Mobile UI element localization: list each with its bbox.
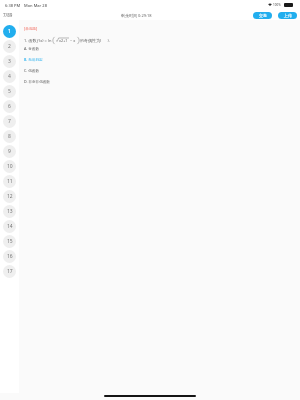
staticText: 100% — [273, 3, 281, 7]
button[interactable]: 交卷 — [253, 12, 272, 19]
staticText: D. 非奇非偶函数 — [24, 79, 50, 84]
staticText: C. 偶函数 — [24, 68, 39, 73]
staticText: 剩余时间 0:29:18 — [121, 13, 152, 18]
staticText: 5 — [8, 88, 11, 95]
button[interactable]: 9 — [3, 145, 16, 158]
button[interactable]: 11 — [3, 175, 16, 188]
button[interactable]: C. 偶函数 — [24, 65, 300, 76]
button[interactable]: 上传 — [278, 12, 297, 19]
button[interactable]: 2 — [3, 40, 16, 53]
button[interactable]: 15 — [3, 235, 16, 248]
staticText: Mon Mar 28 — [24, 3, 47, 8]
button[interactable]: 14 — [3, 220, 16, 233]
staticText: 13 — [7, 208, 13, 215]
button[interactable]: 13 — [3, 205, 16, 218]
staticText: A. 奇函数 — [24, 46, 40, 51]
button[interactable]: 8 — [3, 130, 16, 143]
staticText: 16 — [7, 253, 13, 260]
staticText: [单选题] — [24, 26, 38, 31]
staticText: 上传 — [284, 13, 292, 18]
staticText: 8 — [8, 133, 11, 140]
staticText: 1. 函数 — [24, 38, 37, 43]
staticText: 17 — [7, 268, 13, 275]
button[interactable]: 17 — [3, 265, 16, 278]
staticText: 2 — [8, 43, 11, 50]
staticText: 10 — [7, 163, 13, 170]
staticText: 9 — [8, 148, 11, 155]
staticText: 6 — [8, 103, 11, 110]
staticText: 12 — [7, 193, 13, 200]
staticText: 的奇偶性为( ). — [80, 38, 110, 43]
staticText: 1 — [8, 28, 11, 35]
staticText: − x — [70, 38, 76, 43]
button[interactable]: 7 — [3, 115, 16, 128]
button[interactable]: A. 奇函数 — [24, 43, 300, 54]
staticText: 14 — [7, 223, 13, 230]
button[interactable]: 5 — [3, 85, 16, 98]
button[interactable]: 10 — [3, 160, 16, 173]
staticText: x2+1 — [59, 38, 68, 43]
staticText: f — [37, 38, 39, 43]
staticText: 7/89 — [3, 12, 13, 18]
staticText: B. 无法判定 — [24, 57, 43, 62]
staticText: 6:38 PM — [5, 3, 21, 8]
staticText: 3 — [8, 58, 11, 65]
staticText: (x) = ln — [39, 38, 52, 43]
staticText: 7 — [8, 118, 11, 125]
button[interactable]: 12 — [3, 190, 16, 203]
button[interactable]: 3 — [3, 55, 16, 68]
button[interactable]: 4 — [3, 70, 16, 83]
staticText: 15 — [7, 238, 13, 245]
button[interactable]: 6 — [3, 100, 16, 113]
button[interactable]: 16 — [3, 250, 16, 263]
staticText: 交卷 — [259, 13, 267, 18]
button[interactable]: Back — [3, 12, 13, 18]
staticText: 11 — [7, 178, 13, 185]
button[interactable]: D. 非奇非偶函数 — [24, 76, 300, 87]
button[interactable]: 1 — [3, 25, 16, 38]
staticText: 4 — [8, 73, 11, 80]
button[interactable]: B. 无法判定 — [24, 54, 300, 65]
